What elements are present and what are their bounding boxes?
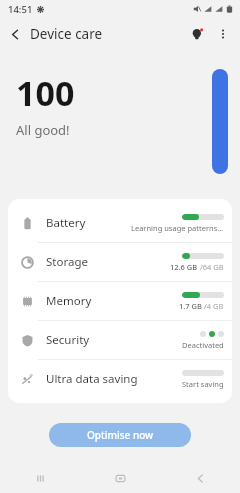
staticText: /64 GB <box>198 262 224 272</box>
staticText: All good! <box>16 121 70 139</box>
staticText: Battery <box>46 215 86 231</box>
button[interactable]: Home <box>80 463 160 493</box>
staticText: 14:51 <box>8 3 33 16</box>
staticText: Device care <box>30 25 103 43</box>
button[interactable]: Ultra data saving <box>8 360 232 398</box>
button[interactable]: Security <box>8 321 232 359</box>
button[interactable]: Battery <box>8 204 232 242</box>
button[interactable]: Recents <box>0 463 80 493</box>
staticText: 100 <box>16 70 75 116</box>
staticText: Learning usage patterns… <box>131 223 224 233</box>
button[interactable]: More options <box>210 21 236 47</box>
button[interactable]: Back <box>0 19 30 49</box>
staticText: 12.6 GB <box>170 262 198 272</box>
button[interactable]: Optimise now <box>49 423 191 447</box>
staticText: Memory <box>46 293 92 309</box>
button[interactable]: Storage <box>8 243 232 281</box>
staticText: 1.7 GB <box>179 301 202 311</box>
staticText: Security <box>46 332 90 348</box>
staticText: Start saving <box>182 379 224 389</box>
staticText: Ultra data saving <box>46 371 138 387</box>
button[interactable]: Back <box>160 463 240 493</box>
button[interactable]: Memory <box>8 282 232 320</box>
staticText: Storage <box>46 254 88 270</box>
staticText: Optimise now <box>87 428 154 442</box>
staticText: /4 GB <box>202 301 224 311</box>
staticText: Deactivated <box>182 340 224 350</box>
button[interactable]: Tips <box>184 21 210 47</box>
